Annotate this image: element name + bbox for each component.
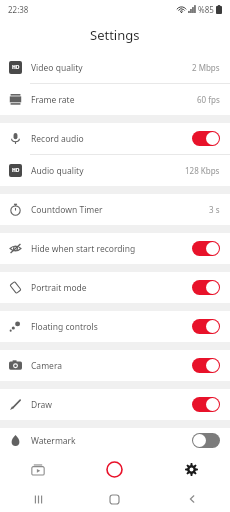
staticText: Record audio [31,133,84,145]
button[interactable]: Countdown Timer [0,194,230,225]
other: On [192,358,220,373]
button[interactable]: Portrait mode [0,272,230,303]
button[interactable]: HD [0,52,230,83]
button[interactable]: Hide when start recording [0,233,230,264]
button[interactable]: Home [76,486,153,512]
button[interactable]: Record audio [0,123,230,154]
staticText: 128 Kbps [185,165,220,176]
staticText: Portrait mode [31,282,87,294]
other: On [192,397,220,412]
staticText: 3 s [209,204,220,215]
button[interactable]: Settings [153,453,230,486]
staticText: HD [12,167,20,174]
button[interactable]: Watermark [0,428,230,453]
staticText: Hide when start recording [31,243,136,255]
staticText: Countdown Timer [31,204,103,216]
button[interactable]: Back [153,486,230,512]
button[interactable]: Draw [0,389,230,420]
button[interactable]: Frame rate [0,84,230,115]
staticText: Audio quality [31,165,84,177]
staticText: Frame rate [31,94,75,106]
staticText: 60 fps [197,94,220,105]
other: On [192,241,220,256]
button[interactable]: Floating controls [0,311,230,342]
other: Off [192,433,220,448]
staticText: Floating controls [31,321,98,333]
staticText: 22:38 [8,4,29,15]
button[interactable]: Recents [0,486,76,512]
other: On [192,319,220,334]
staticText: Draw [31,399,52,411]
staticText: Camera [31,360,62,372]
other: On [192,280,220,295]
staticText: Settings [90,26,140,44]
button[interactable]: Record [76,453,153,486]
button[interactable]: Gallery [0,453,76,486]
staticText: %85 [198,4,214,15]
staticText: Watermark [31,435,76,447]
button[interactable]: HD [0,155,230,186]
staticText: Video quality [31,62,83,74]
staticText: 2 Mbps [192,62,220,73]
other: On [192,131,220,146]
staticText: HD [12,64,20,71]
button[interactable]: Camera [0,350,230,381]
